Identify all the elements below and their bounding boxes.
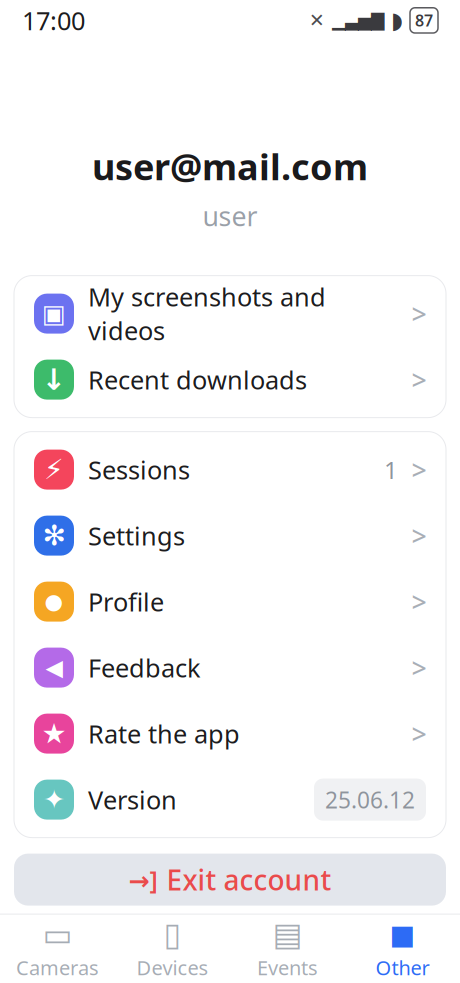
staticText: Other [375, 954, 429, 981]
staticText: > [411, 650, 426, 685]
button[interactable]: →] [14, 854, 446, 906]
button[interactable]: ✻ [14, 503, 446, 569]
staticText: user@mail.com [92, 142, 368, 190]
staticText: 87 [415, 10, 433, 31]
button[interactable]: ↓ [14, 347, 446, 413]
button[interactable]: ▭ [0, 910, 115, 983]
staticText: ✻ [42, 520, 65, 551]
staticText: > [411, 452, 426, 487]
staticText: ● [44, 589, 63, 614]
staticText: ✦ [43, 784, 65, 815]
staticText: Events [257, 954, 318, 981]
staticText: My screenshots and videos [88, 280, 326, 347]
button[interactable]: ▤ [230, 910, 345, 983]
staticText: user [202, 198, 257, 234]
staticText: 17:00 [22, 4, 85, 37]
staticText: Rate the app [88, 717, 240, 750]
staticText: Settings [88, 519, 185, 552]
staticText: > [411, 716, 426, 751]
staticText: ◗ [391, 7, 403, 33]
staticText: Version [88, 783, 177, 816]
staticText: ▁▃▅▇ [332, 11, 384, 30]
staticText: Feedback [88, 651, 201, 684]
button[interactable]: ⚡︎ [14, 437, 446, 503]
staticText: > [411, 584, 426, 619]
staticText: ▤ [272, 916, 302, 952]
staticText: 1 [384, 454, 398, 486]
staticText: ◼ [389, 916, 416, 952]
staticText: 25.06.12 [325, 785, 415, 815]
staticText: ▭ [42, 916, 72, 952]
button[interactable]: ◼ [345, 910, 460, 983]
staticText: > [411, 362, 426, 397]
staticText: Exit account [166, 861, 331, 898]
staticText: ⚡︎ [44, 454, 64, 485]
button[interactable]: ◀ [14, 635, 446, 701]
staticText: ↓ [41, 363, 66, 396]
staticText: ▯ [163, 916, 181, 952]
staticText: Sessions [88, 453, 190, 486]
staticText: ★ [41, 718, 66, 749]
staticText: Cameras [16, 954, 99, 981]
button[interactable]: ● [14, 569, 446, 635]
staticText: ▣ [42, 299, 66, 328]
staticText: Devices [136, 954, 208, 981]
staticText: > [411, 296, 426, 331]
staticText: Recent downloads [88, 363, 307, 396]
button[interactable]: ★ [14, 701, 446, 767]
staticText: > [411, 518, 426, 553]
button[interactable]: ▯ [115, 910, 230, 983]
button[interactable]: ✦ [14, 767, 446, 833]
staticText: Profile [88, 585, 164, 618]
staticText: ◀ [45, 655, 62, 680]
button[interactable]: ▣ [14, 281, 446, 347]
staticText: ✕ [309, 10, 325, 31]
staticText: →] [128, 863, 157, 896]
